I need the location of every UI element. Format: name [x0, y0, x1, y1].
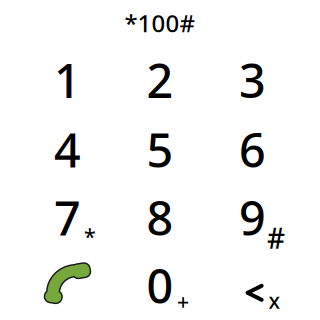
staticText: 7	[54, 186, 81, 248]
staticText: 2	[146, 49, 173, 111]
staticText: x	[268, 286, 280, 315]
staticText: 8	[146, 186, 173, 248]
button[interactable]: Call	[21, 251, 113, 319]
staticText: 5	[146, 118, 173, 180]
staticText: *	[84, 222, 96, 250]
button[interactable]: 9	[206, 183, 298, 251]
staticText: 1	[54, 49, 81, 111]
staticText: 3	[239, 49, 266, 111]
staticText: 4	[54, 118, 81, 180]
staticText: *100#	[124, 7, 195, 39]
button[interactable]: 6	[206, 115, 298, 183]
staticText: 9	[239, 186, 266, 248]
staticText: +	[177, 287, 189, 316]
button[interactable]: 4	[21, 115, 113, 183]
button[interactable]: 2	[114, 46, 206, 114]
button[interactable]: Delete	[206, 251, 298, 319]
button[interactable]: 5	[114, 115, 206, 183]
button[interactable]: 1	[21, 46, 113, 114]
staticText: #	[267, 219, 285, 257]
button[interactable]: 8	[114, 183, 206, 251]
staticText: 0	[146, 254, 173, 316]
button[interactable]: 0	[114, 251, 206, 319]
button[interactable]: 7	[21, 183, 113, 251]
staticText: 6	[239, 118, 266, 180]
button[interactable]: 3	[206, 46, 298, 114]
